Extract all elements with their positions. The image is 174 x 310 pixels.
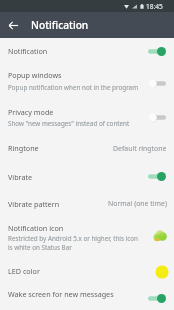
staticText: Privacy mode (8, 107, 54, 117)
button[interactable]: LED color (0, 258, 174, 285)
staticText: Popup notification when not in the progr… (8, 83, 146, 92)
staticText: Vibrate pattern (8, 199, 60, 209)
staticText: Wake screen for new messages (8, 289, 114, 299)
staticText: Notification icon (8, 223, 64, 233)
staticText: Default ringtone (113, 144, 167, 153)
button[interactable]: Popup windows (0, 64, 174, 99)
button[interactable]: Ringtone (0, 135, 174, 162)
button[interactable]: Vibrate (0, 162, 174, 190)
staticText: Normal (one time) (108, 199, 167, 208)
staticText: Notification (31, 18, 89, 32)
staticText: LED color (8, 266, 40, 276)
staticText: Ringtone (8, 143, 39, 153)
staticText: 18:45 (146, 2, 163, 11)
staticText: Show "new messages" instead of content (8, 119, 146, 128)
button[interactable]: Notification toggle, on (148, 46, 166, 57)
staticText: Notification (8, 46, 48, 56)
button[interactable]: Choose LED color (155, 265, 169, 279)
button[interactable]: Popup windows toggle, off (148, 78, 166, 89)
button[interactable]: Vibrate toggle, on (148, 171, 166, 182)
staticText: Restricted by Android 5.x or higher, thi… (8, 234, 140, 252)
button[interactable]: Choose notification icon (152, 229, 168, 245)
button[interactable]: Back (0, 12, 26, 38)
button[interactable]: Notification (0, 38, 174, 64)
button[interactable]: Notification icon (0, 217, 174, 258)
button[interactable]: Vibrate pattern (0, 190, 174, 217)
button[interactable]: Wake screen for new messages toggle, on (148, 293, 166, 304)
staticText: Popup windows (8, 70, 62, 80)
button[interactable]: Wake screen for new messages (0, 285, 174, 310)
button[interactable]: Privacy mode (0, 99, 174, 135)
button[interactable]: Privacy mode toggle, off (148, 112, 166, 123)
staticText: Vibrate (8, 172, 33, 182)
